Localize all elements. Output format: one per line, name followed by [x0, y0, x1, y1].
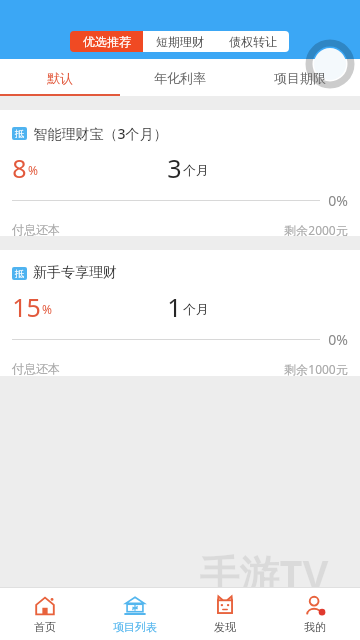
button[interactable]: 年化利率	[120, 59, 240, 96]
staticText: 0%	[328, 191, 348, 210]
staticText: %	[42, 301, 52, 317]
staticText: 0%	[328, 330, 348, 349]
staticText: 短期理财	[156, 34, 204, 49]
staticText: 1	[167, 290, 182, 320]
button[interactable]: 项目期限	[240, 59, 360, 96]
staticText: 发现	[214, 620, 236, 634]
staticText: 剩余1000元	[284, 361, 348, 376]
staticText: %	[28, 162, 38, 178]
button[interactable]: 优选推荐	[70, 31, 143, 52]
button[interactable]: 首页	[0, 588, 90, 640]
staticText: 我的	[304, 620, 326, 634]
staticText: 15	[12, 290, 41, 320]
staticText: 默认	[47, 70, 73, 86]
button[interactable]: 发现	[180, 588, 270, 640]
staticText: 抵	[15, 268, 24, 279]
staticText: 项目期限	[274, 70, 326, 86]
staticText: 优选推荐	[83, 34, 131, 49]
button[interactable]: 债权转让	[216, 31, 289, 52]
button[interactable]: 抵	[0, 250, 360, 376]
staticText: 项目列表	[113, 620, 157, 634]
button[interactable]: 短期理财	[143, 31, 216, 52]
staticText: 付息还本	[12, 361, 60, 376]
staticText: 个月	[183, 162, 209, 178]
staticText: 个月	[183, 301, 209, 317]
staticText: 首页	[34, 620, 56, 634]
button[interactable]: 默认	[0, 59, 120, 96]
staticText: 3	[167, 151, 182, 181]
staticText: 剩余2000元	[284, 222, 348, 236]
staticText: 智能理财宝（3个月）	[33, 124, 168, 143]
button[interactable]: 抵	[0, 110, 360, 236]
staticText: 付息还本	[12, 222, 60, 236]
staticText: 年化利率	[154, 70, 206, 86]
staticText: 抵	[15, 128, 24, 139]
staticText: 新手专享理财	[33, 264, 117, 282]
staticText: 手游TV	[199, 546, 329, 592]
staticText: 债权转让	[229, 34, 277, 49]
button[interactable]: 项目列表	[90, 588, 180, 640]
button[interactable]: 我的	[270, 588, 360, 640]
staticText: 8	[12, 151, 27, 181]
button[interactable]: Scroll to top	[308, 42, 352, 86]
